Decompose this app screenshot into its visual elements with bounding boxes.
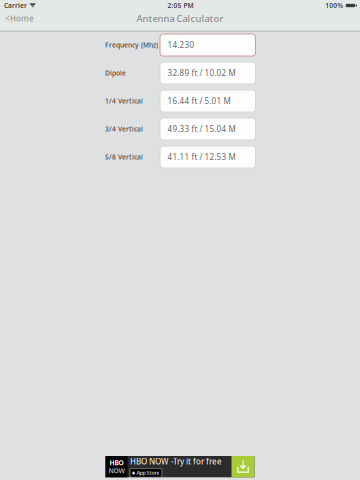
staticText: 3/4 Vertical [105, 125, 143, 133]
staticText: 5/8 Vertical [105, 153, 143, 161]
staticText: 16.44 ft / 5.01 M [167, 96, 230, 106]
staticText: 100% [325, 1, 343, 10]
button[interactable]: HBO [105, 456, 254, 477]
staticText: 1/4 Vertical [105, 97, 143, 105]
staticText: Dipole [105, 69, 126, 77]
staticText: App Store [136, 469, 159, 476]
staticText: Antenna Calculator [136, 12, 223, 25]
staticText: <Home [5, 13, 34, 24]
staticText: NOW [108, 466, 124, 475]
staticText: HBO [109, 458, 123, 467]
staticText: Frequency (Mhz) [105, 41, 158, 49]
staticText: Carrier [4, 1, 27, 10]
staticText: 2:05 PM [167, 1, 193, 10]
staticText: 14.230 [167, 40, 194, 50]
staticText: 32.89 ft / 10.02 M [167, 68, 235, 78]
staticText: 49.33 ft / 15.04 M [167, 124, 235, 134]
button[interactable]: <Home [0, 10, 40, 27]
staticText: 41.11 ft / 12.53 M [167, 152, 235, 162]
staticText: HBO NOW -Try it for free [130, 456, 222, 467]
